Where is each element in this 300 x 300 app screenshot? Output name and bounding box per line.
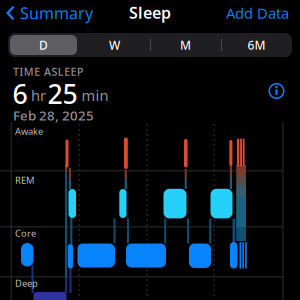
button[interactable]: Add Data xyxy=(209,0,289,26)
staticText: 25 xyxy=(47,76,77,111)
staticText: Deep xyxy=(15,277,38,289)
button[interactable]: 6M xyxy=(221,33,292,57)
button[interactable]: Summary xyxy=(6,0,93,26)
staticText: Feb 28, 2025 xyxy=(13,106,94,124)
staticText: Awake xyxy=(15,125,43,137)
staticText: W xyxy=(109,37,120,53)
staticText: REM xyxy=(15,174,34,186)
button[interactable]: M xyxy=(150,33,221,57)
staticText: 6M xyxy=(247,37,265,53)
staticText: hr xyxy=(31,85,46,105)
staticText: Add Data xyxy=(226,3,289,23)
button[interactable]: More information xyxy=(266,81,286,101)
button[interactable]: D xyxy=(8,33,79,57)
staticText: M xyxy=(180,37,191,53)
staticText: Summary xyxy=(20,2,93,24)
staticText: 6 xyxy=(12,76,27,111)
staticText: TIME ASLEEP xyxy=(13,64,84,79)
button[interactable]: W xyxy=(79,33,150,57)
staticText: D xyxy=(39,37,48,53)
staticText: min xyxy=(81,85,108,105)
staticText: Core xyxy=(15,227,36,239)
staticText: Sleep xyxy=(129,2,171,23)
